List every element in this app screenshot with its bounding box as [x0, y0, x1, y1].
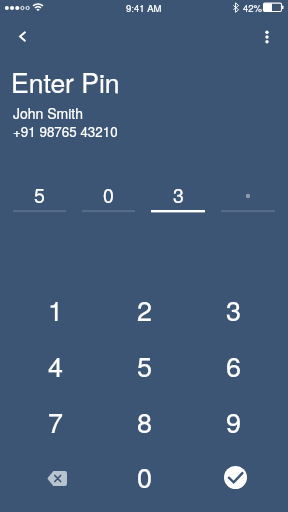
- button[interactable]: Confirm: [189, 449, 278, 504]
- button[interactable]: 9: [189, 393, 278, 449]
- staticText: 8: [137, 402, 153, 441]
- staticText: 9:41 AM: [126, 1, 162, 15]
- button[interactable]: 5: [100, 337, 189, 393]
- button[interactable]: Back: [5, 20, 38, 53]
- button[interactable]: 2: [100, 281, 189, 337]
- staticText: Enter Pin: [11, 63, 120, 101]
- staticText: 6: [226, 346, 242, 385]
- staticText: 9: [226, 402, 242, 441]
- button[interactable]: 6: [189, 337, 278, 393]
- staticText: 42%: [243, 1, 263, 15]
- staticText: 3: [226, 290, 242, 329]
- button[interactable]: 3: [189, 281, 278, 337]
- staticText: 0: [137, 457, 153, 496]
- button[interactable]: [221, 181, 275, 214]
- staticText: 0: [103, 181, 114, 203]
- staticText: 5: [137, 346, 153, 385]
- button[interactable]: Backspace: [12, 449, 100, 504]
- button[interactable]: 0: [100, 449, 189, 504]
- staticText: John Smith: [13, 103, 83, 123]
- staticText: 4: [48, 346, 64, 385]
- button[interactable]: 4: [12, 337, 100, 393]
- button[interactable]: 5: [13, 181, 66, 214]
- staticText: 7: [48, 402, 64, 441]
- button[interactable]: 8: [100, 393, 189, 449]
- button[interactable]: 0: [82, 181, 135, 214]
- staticText: 5: [34, 181, 45, 203]
- button[interactable]: 3: [151, 181, 205, 214]
- button[interactable]: More options: [250, 20, 283, 53]
- staticText: +91 98765 43210: [13, 122, 118, 141]
- staticText: 2: [137, 290, 153, 329]
- staticText: 1: [48, 290, 64, 329]
- button[interactable]: 1: [12, 281, 100, 337]
- button[interactable]: 7: [12, 393, 100, 449]
- staticText: 3: [173, 181, 184, 203]
